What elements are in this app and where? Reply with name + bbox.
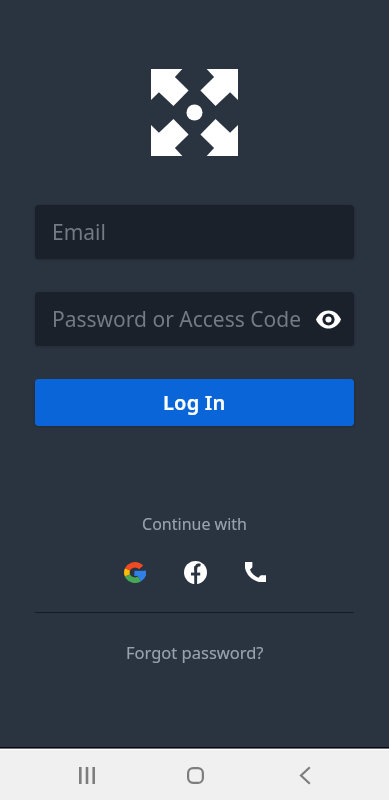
staticText: Continue with [0,513,389,535]
staticText: Email [52,218,106,247]
button[interactable]: Email [35,205,354,259]
button[interactable]: Password or Access Code [35,292,354,346]
button[interactable]: Back [284,750,325,800]
button[interactable]: Home [175,750,216,800]
button[interactable]: Continue with Facebook [175,552,215,592]
staticText: Log In [163,389,226,416]
button[interactable]: Continue with Google [115,552,155,592]
button[interactable]: Continue with phone [235,552,275,592]
staticText: Password or Access Code [52,305,302,334]
button[interactable]: Show password [311,302,345,336]
button[interactable]: Forgot password? [116,636,274,668]
button[interactable]: Log In [35,379,354,426]
button[interactable]: Recents [66,750,107,800]
